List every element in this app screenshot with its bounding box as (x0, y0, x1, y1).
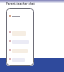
staticText: Parent-teacher chat (6, 2, 35, 6)
button[interactable] (9, 15, 20, 17)
